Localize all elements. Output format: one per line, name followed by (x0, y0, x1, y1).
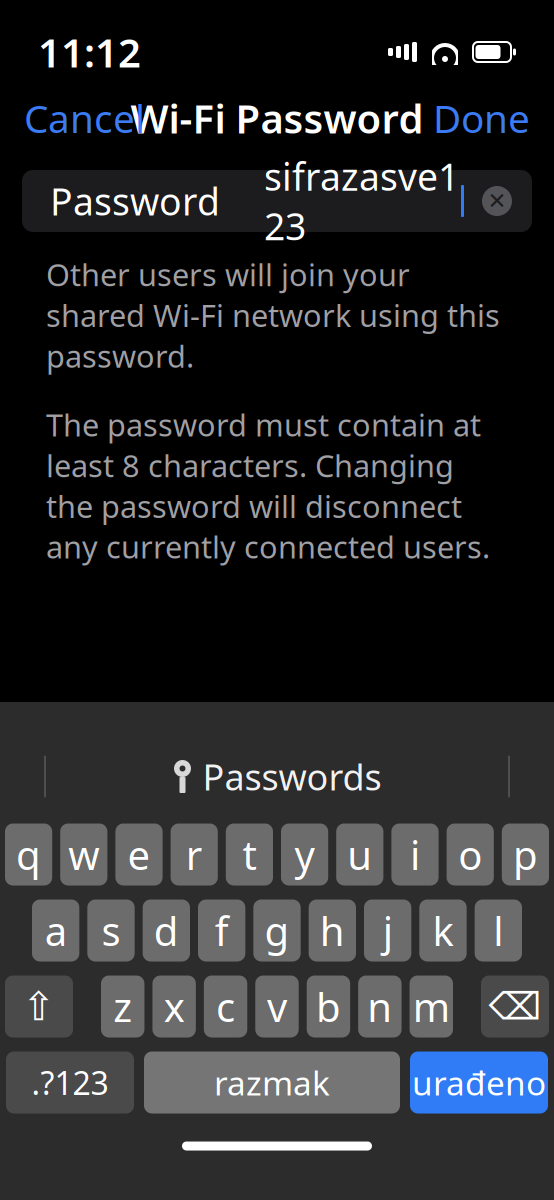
staticText: f (215, 904, 229, 957)
button[interactable]: h (309, 899, 356, 961)
button[interactable]: l (475, 899, 522, 961)
staticText: z (113, 980, 132, 1033)
button[interactable]: s (87, 899, 135, 961)
staticText: .?123 (31, 1061, 108, 1104)
button[interactable]: o (447, 823, 494, 885)
staticText: i (410, 828, 420, 881)
staticText: j (383, 904, 393, 957)
staticText: o (458, 828, 482, 881)
button[interactable]: y (281, 823, 328, 885)
button[interactable]: w (60, 823, 107, 885)
staticText: Password (50, 176, 220, 226)
button[interactable]: x (152, 975, 196, 1037)
button[interactable]: u (336, 823, 383, 885)
staticText: d (154, 904, 179, 957)
staticText: r (186, 828, 203, 881)
button[interactable]: Passwords (156, 745, 397, 808)
staticText: a (45, 904, 67, 957)
staticText: Done (433, 92, 530, 144)
staticText: n (367, 980, 392, 1033)
button[interactable]: Shift (5, 975, 73, 1037)
button[interactable]: j (364, 899, 411, 961)
staticText: p (513, 828, 538, 881)
button[interactable]: v (255, 975, 299, 1037)
button[interactable]: r (171, 823, 218, 885)
staticText: k (432, 904, 453, 957)
staticText: ⌫ (488, 985, 541, 1028)
staticText: Other users will join your shared Wi-Fi … (46, 254, 500, 376)
button[interactable]: e (115, 823, 163, 885)
button[interactable]: Delete (481, 975, 549, 1037)
button[interactable]: Cancel (14, 84, 155, 152)
staticText: sifrazasve123 (264, 151, 459, 251)
staticText: h (320, 904, 345, 957)
staticText: b (316, 980, 341, 1033)
staticText: ⇧ (22, 984, 56, 1029)
staticText: m (413, 980, 450, 1033)
button[interactable]: z (101, 975, 144, 1037)
button[interactable]: m (410, 975, 453, 1037)
staticText: Wi-Fi Password (130, 91, 423, 144)
staticText: urađeno (412, 1060, 546, 1105)
button[interactable]: k (419, 899, 467, 961)
staticText: Passwords (202, 753, 381, 800)
staticText: Cancel (24, 92, 145, 144)
button[interactable]: c (204, 975, 247, 1037)
staticText: q (16, 828, 41, 881)
staticText: 11:12 (38, 25, 141, 78)
button[interactable]: Done (423, 84, 540, 152)
staticText: g (264, 904, 289, 957)
staticText: s (101, 904, 120, 957)
button[interactable]: p (502, 823, 549, 885)
staticText: c (216, 980, 235, 1033)
button[interactable]: a (32, 899, 79, 961)
staticText: x (164, 980, 185, 1033)
button[interactable]: Clear text (476, 180, 518, 222)
staticText: w (68, 828, 99, 881)
button[interactable]: t (226, 823, 273, 885)
button[interactable]: urađeno (410, 1051, 548, 1113)
staticText: e (127, 828, 150, 881)
button[interactable]: .?123 (6, 1051, 134, 1113)
button[interactable]: d (143, 899, 190, 961)
staticText: y (295, 828, 315, 881)
button[interactable]: g (253, 899, 301, 961)
button[interactable]: b (307, 975, 350, 1037)
staticText: u (347, 828, 372, 881)
button[interactable]: q (5, 823, 52, 885)
staticText: razmak (214, 1060, 330, 1105)
staticText: ✕ (487, 188, 506, 214)
button[interactable]: n (358, 975, 401, 1037)
staticText: v (267, 980, 287, 1033)
staticText: l (493, 904, 503, 957)
button[interactable]: razmak (144, 1051, 400, 1113)
button[interactable]: i (391, 823, 439, 885)
staticText: t (242, 828, 256, 881)
staticText: The password must contain at least 8 cha… (46, 404, 490, 567)
button[interactable]: f (198, 899, 245, 961)
